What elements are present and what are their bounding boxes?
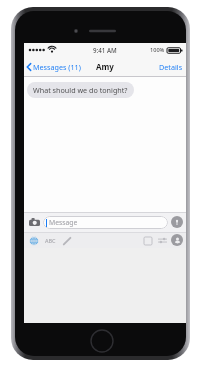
button[interactable]: Draw <box>60 234 73 247</box>
button[interactable]: Settings <box>156 234 169 247</box>
staticText: 9:41 AM <box>93 46 117 54</box>
staticText: What should we do tonight? <box>33 85 128 95</box>
button[interactable]: Camera <box>27 215 41 229</box>
button[interactable]: What should we do tonight? <box>27 82 134 98</box>
button[interactable]: Message <box>43 216 168 229</box>
button[interactable]: ABC <box>43 235 58 246</box>
button[interactable]: Change language <box>27 234 40 247</box>
staticText: Message <box>49 218 78 227</box>
other: Home <box>88 327 116 355</box>
staticText: 100% <box>150 46 165 54</box>
staticText: Details <box>159 62 183 72</box>
staticText: ABC <box>45 237 56 244</box>
button[interactable]: Apps <box>141 234 154 247</box>
staticText: Messages (11) <box>33 62 81 72</box>
button[interactable]: Contact <box>171 234 183 246</box>
button[interactable]: Messages (11) <box>24 59 85 75</box>
button[interactable]: Details <box>156 59 186 75</box>
button[interactable]: Record audio <box>171 216 183 228</box>
staticText: Amy <box>96 61 114 72</box>
